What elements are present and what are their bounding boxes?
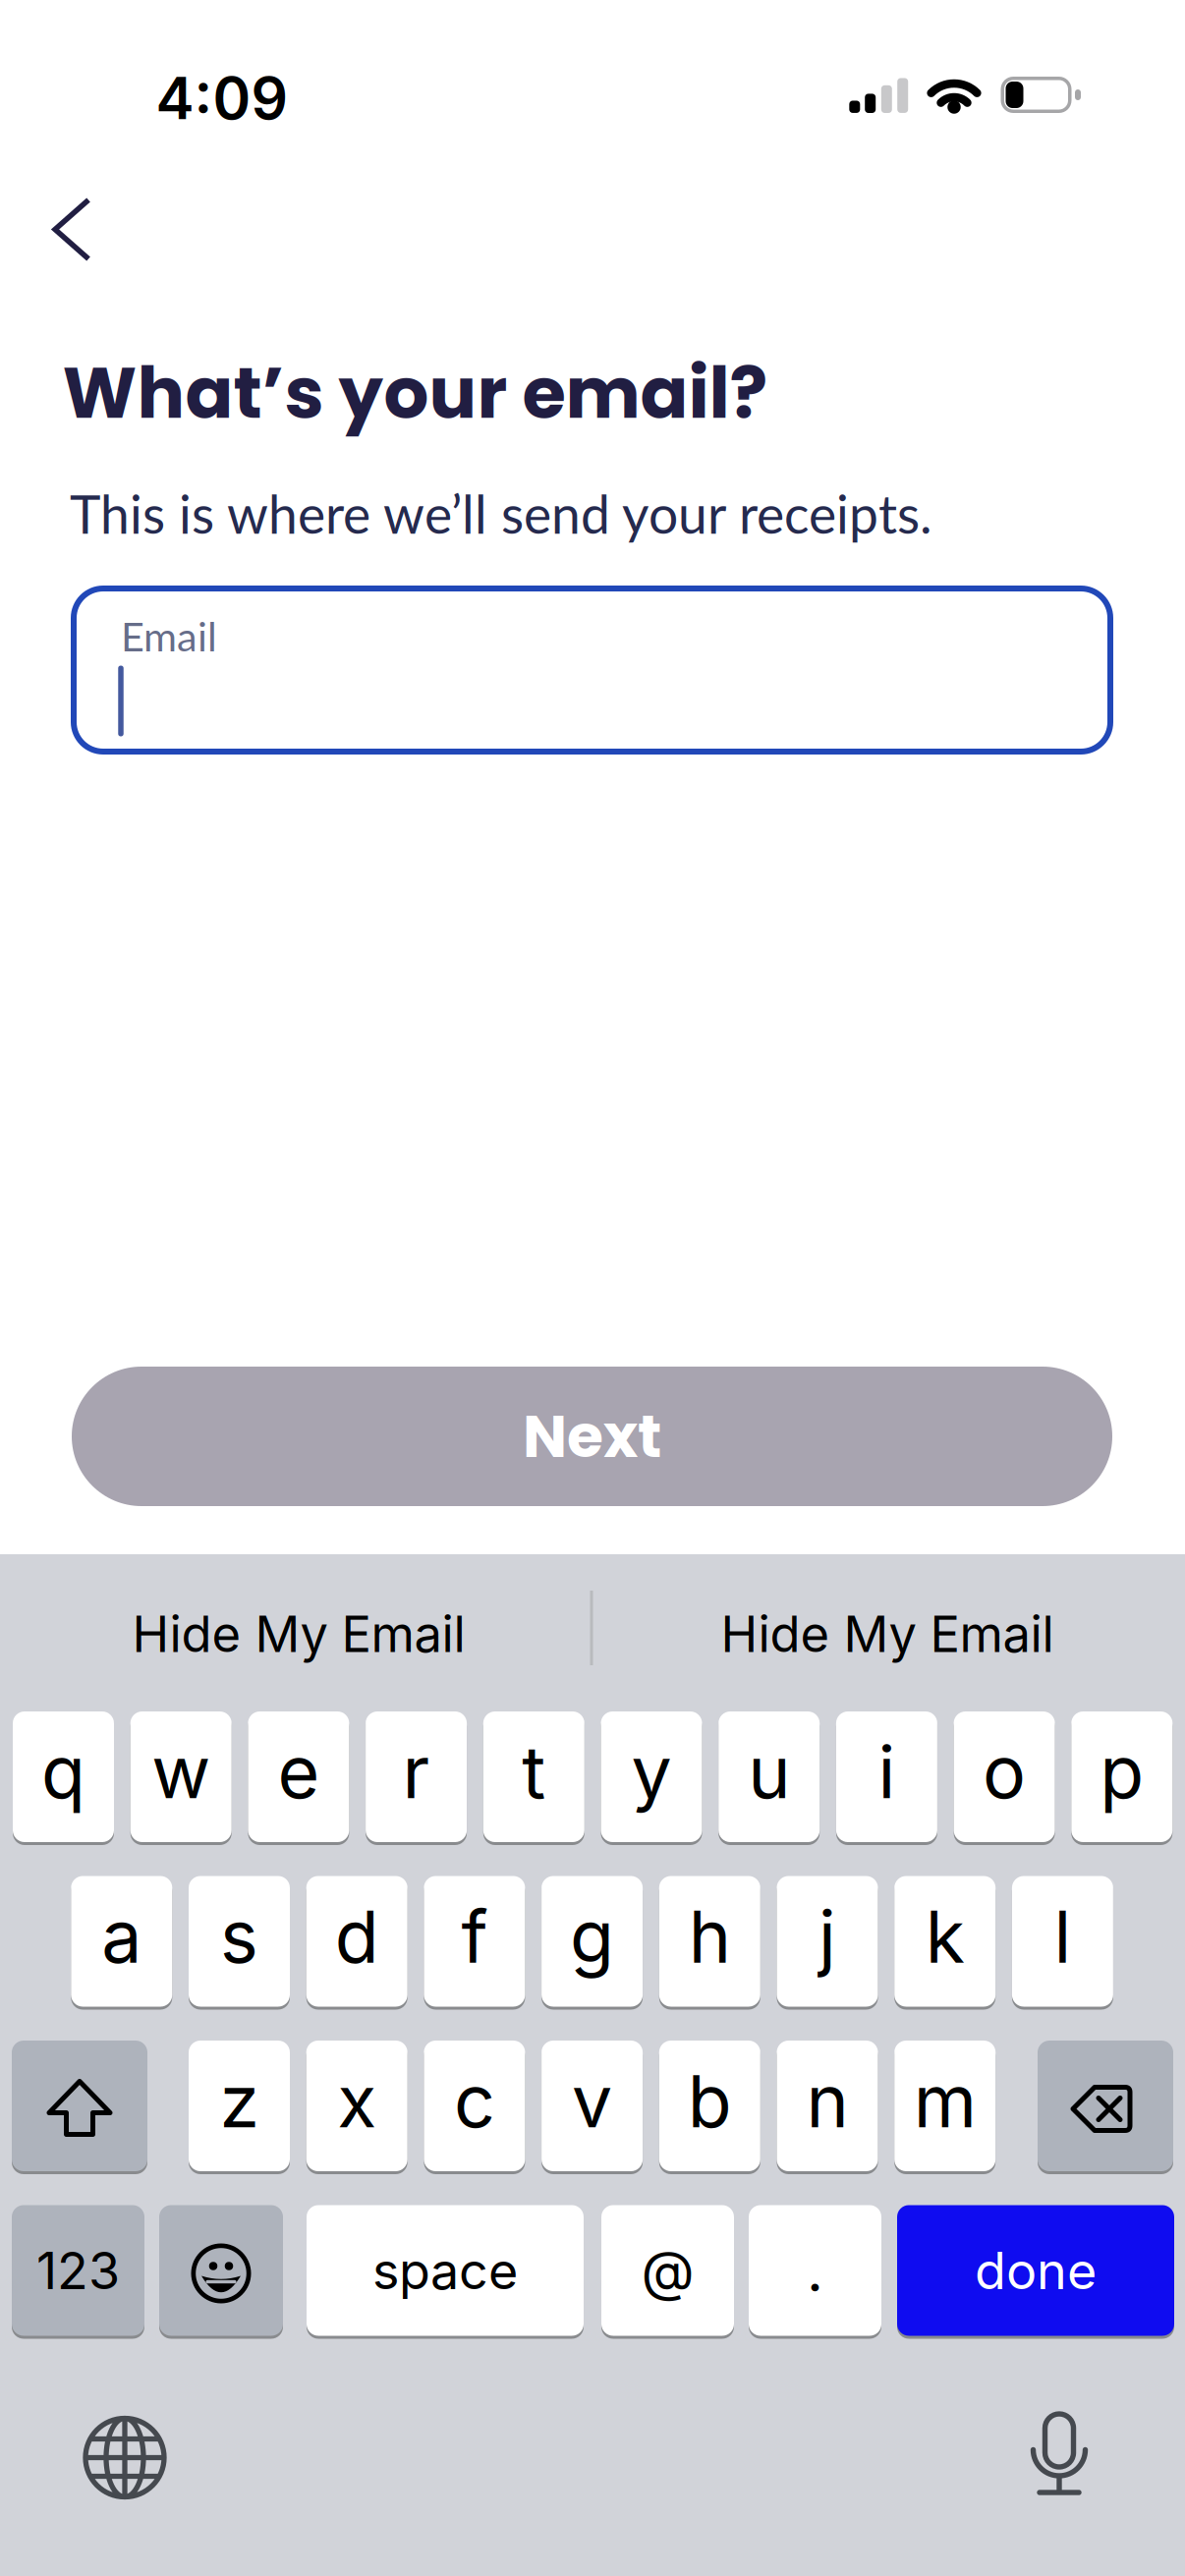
staticText: i — [878, 1728, 896, 1815]
staticText: @ — [641, 2237, 694, 2304]
staticText: f — [461, 1893, 488, 1980]
button[interactable]: i — [836, 1710, 937, 1844]
staticText: Next — [523, 1395, 661, 1478]
button[interactable]: n — [777, 2039, 878, 2173]
button[interactable]: Back — [52, 197, 91, 262]
staticText: t — [522, 1728, 546, 1815]
button[interactable]: s — [189, 1875, 290, 2008]
button[interactable]: k — [894, 1875, 996, 2008]
button[interactable]: r — [366, 1710, 467, 1844]
staticText: r — [402, 1728, 430, 1815]
button[interactable]: done — [897, 2204, 1174, 2337]
button[interactable]: u — [718, 1710, 820, 1844]
button[interactable]: w — [130, 1710, 232, 1844]
button[interactable]: l — [1012, 1875, 1113, 2008]
staticText: v — [572, 2057, 612, 2145]
staticText: b — [688, 2057, 732, 2145]
button[interactable]: . — [749, 2204, 881, 2337]
button[interactable]: a — [71, 1875, 172, 2008]
button[interactable]: p — [1071, 1710, 1173, 1844]
button[interactable]: v — [542, 2039, 643, 2173]
staticText: p — [1100, 1728, 1144, 1815]
staticText: y — [631, 1728, 672, 1815]
staticText: . — [807, 2236, 823, 2305]
staticText: c — [454, 2057, 495, 2145]
button[interactable]: b — [659, 2039, 760, 2173]
staticText: d — [335, 1893, 379, 1980]
staticText: m — [914, 2057, 976, 2145]
button[interactable]: g — [542, 1875, 643, 2008]
button[interactable]: d — [306, 1875, 407, 2008]
button[interactable]: Dictation — [1028, 2411, 1091, 2497]
staticText: 123 — [36, 2240, 120, 2301]
button[interactable]: Email — [71, 586, 1113, 755]
staticText: 4:09 — [156, 63, 288, 133]
staticText: u — [748, 1728, 790, 1815]
staticText: z — [220, 2057, 259, 2145]
button[interactable]: f — [424, 1875, 525, 2008]
button[interactable]: Hide My Email — [721, 1604, 1054, 1664]
button[interactable]: c — [424, 2039, 525, 2173]
button[interactable]: Next keyboard — [82, 2414, 168, 2501]
button[interactable]: z — [189, 2039, 290, 2173]
staticText: Hide My Email — [721, 1604, 1054, 1664]
staticText: s — [220, 1893, 258, 1980]
button[interactable]: 123 — [12, 2204, 144, 2337]
button[interactable]: Next — [72, 1367, 1112, 1506]
button[interactable]: q — [13, 1710, 114, 1844]
staticText: o — [983, 1728, 1026, 1815]
button[interactable]: space — [307, 2204, 584, 2337]
button[interactable]: m — [894, 2039, 996, 2173]
button[interactable]: t — [483, 1710, 584, 1844]
button[interactable]: y — [601, 1710, 702, 1844]
staticText: h — [689, 1893, 731, 1980]
staticText: space — [372, 2240, 518, 2301]
button[interactable]: @ — [601, 2204, 734, 2337]
button[interactable]: Delete — [1038, 2039, 1173, 2173]
staticText: x — [337, 2057, 377, 2145]
staticText: q — [41, 1728, 85, 1815]
staticText: g — [570, 1893, 614, 1980]
staticText: k — [925, 1893, 965, 1980]
staticText: e — [277, 1728, 320, 1815]
staticText: n — [806, 2057, 848, 2145]
staticText: What’s your email? — [62, 343, 768, 442]
staticText: done — [975, 2240, 1097, 2301]
button[interactable]: Emoji — [159, 2204, 283, 2337]
button[interactable]: x — [306, 2039, 407, 2173]
staticText: This is where we’ll send your receipts. — [70, 482, 932, 545]
button[interactable]: Hide My Email — [132, 1604, 465, 1664]
staticText: a — [102, 1893, 142, 1980]
staticText: w — [152, 1728, 210, 1815]
staticText: Email — [121, 611, 217, 660]
staticText: j — [818, 1893, 836, 1980]
button[interactable]: o — [954, 1710, 1055, 1844]
button[interactable]: h — [659, 1875, 760, 2008]
button[interactable]: Shift — [12, 2039, 147, 2173]
staticText: l — [1054, 1893, 1071, 1980]
staticText: Hide My Email — [132, 1604, 465, 1664]
button[interactable]: j — [777, 1875, 878, 2008]
button[interactable]: e — [248, 1710, 349, 1844]
